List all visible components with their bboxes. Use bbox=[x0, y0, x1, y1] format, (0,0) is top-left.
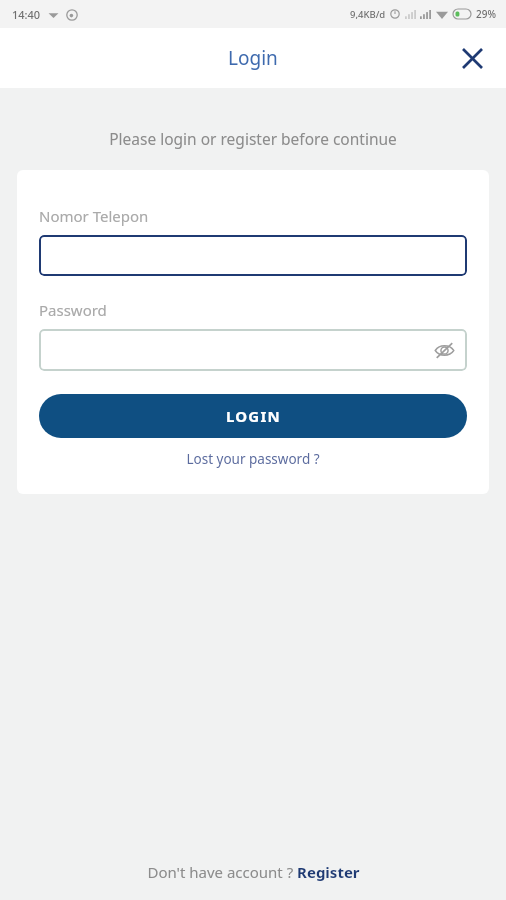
button[interactable]: Lost your password ? bbox=[39, 450, 467, 468]
staticText: Nomor Telepon bbox=[39, 206, 149, 226]
staticText: Lost your password ? bbox=[186, 450, 320, 468]
staticText: 9,4KB/d bbox=[350, 8, 386, 21]
button[interactable]: LOGIN bbox=[39, 394, 467, 438]
button[interactable]: Show password bbox=[429, 335, 459, 365]
staticText: Login bbox=[228, 45, 278, 71]
staticText: LOGIN bbox=[226, 406, 281, 426]
button[interactable]: Show password bbox=[39, 329, 467, 371]
staticText: Don't have account ? Register bbox=[147, 862, 360, 882]
staticText: 14:40 bbox=[12, 7, 41, 22]
staticText: Please login or register before continue bbox=[0, 128, 506, 149]
button[interactable] bbox=[39, 235, 467, 276]
button[interactable]: Close bbox=[452, 38, 492, 78]
staticText: 29% bbox=[476, 7, 496, 21]
button[interactable]: Don't have account ? Register bbox=[0, 862, 506, 882]
staticText: Password bbox=[39, 300, 107, 320]
